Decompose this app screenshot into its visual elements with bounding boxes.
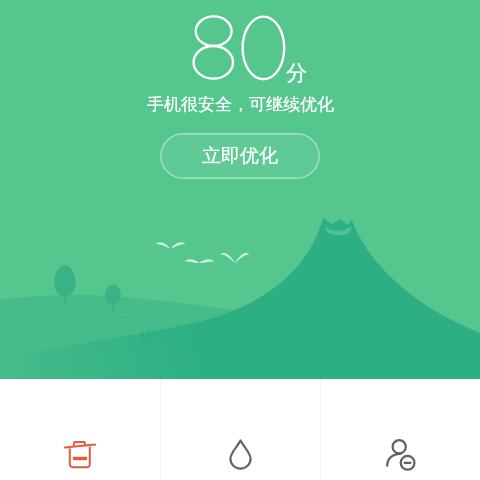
button[interactable]: 立即优化 bbox=[160, 133, 320, 179]
button[interactable]: Blocked contacts bbox=[321, 379, 480, 480]
staticText: 立即优化 bbox=[202, 144, 278, 168]
staticText: 手机很安全，可继续优化 bbox=[147, 94, 334, 115]
button[interactable]: Water cleaner bbox=[161, 379, 320, 480]
other: 80 分 bbox=[0, 0, 480, 379]
button[interactable]: Junk cleanup bbox=[0, 379, 160, 480]
staticText: 分 bbox=[286, 60, 307, 86]
